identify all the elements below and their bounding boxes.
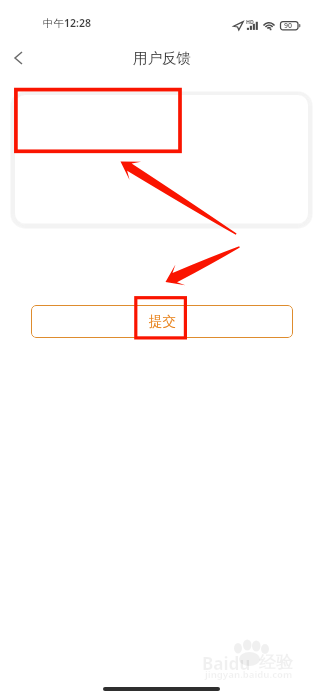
button[interactable] [15, 95, 308, 223]
staticText: jingyan.baidu.com [205, 668, 293, 681]
staticText: HD [246, 18, 254, 25]
staticText: 经验 [259, 652, 293, 673]
staticText: 提交 [149, 313, 176, 330]
staticText: 用户反馈 [133, 49, 191, 67]
button[interactable]: 提交 [31, 305, 293, 338]
button[interactable]: Back [0, 40, 36, 76]
staticText: 中午12:28 [43, 16, 91, 30]
staticText: 90 [284, 21, 293, 31]
staticText: Baidu [202, 652, 251, 675]
